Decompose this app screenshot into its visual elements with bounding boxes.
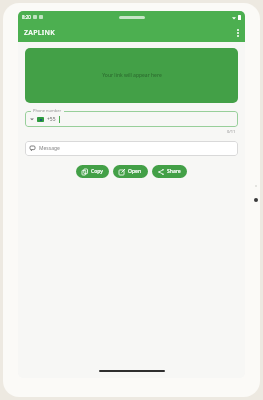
staticText: Message [39, 145, 60, 152]
staticText: Phone number [33, 108, 62, 113]
staticText: Share [167, 168, 181, 175]
staticText: +55 [47, 116, 56, 123]
staticText: 0/11 [227, 129, 236, 134]
button[interactable]: +55 [25, 111, 238, 127]
staticText: ZAPLINK [24, 28, 56, 38]
button[interactable]: Message [25, 141, 238, 156]
button[interactable]: Share [152, 165, 187, 178]
staticText: Open [128, 168, 142, 175]
staticText: Copy [91, 168, 103, 175]
staticText: Your link will appear here [102, 72, 162, 79]
button[interactable]: Open [113, 165, 148, 178]
staticText: 8:20 [22, 14, 31, 20]
button[interactable]: Your link will appear here [25, 48, 238, 103]
button[interactable]: More options [231, 25, 245, 41]
button[interactable]: Copy [76, 165, 109, 178]
